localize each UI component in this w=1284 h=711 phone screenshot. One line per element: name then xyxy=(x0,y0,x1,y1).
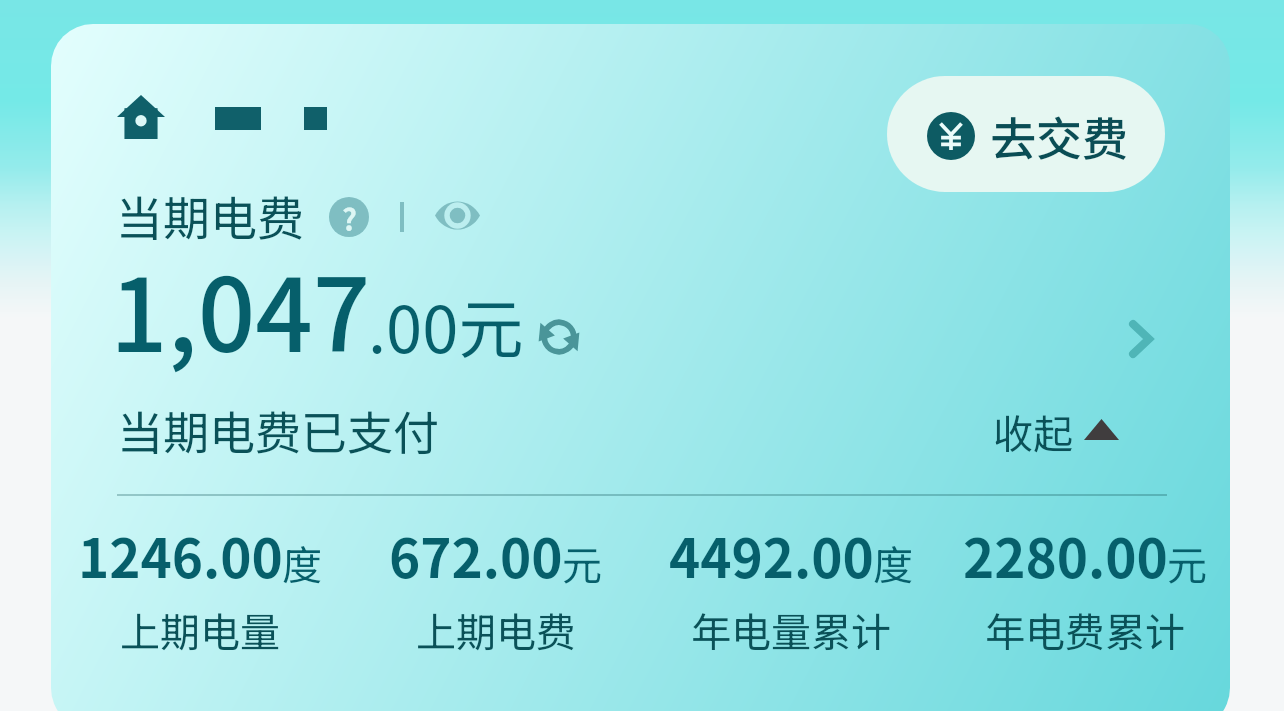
staticText: 上期电费 xyxy=(416,601,576,659)
staticText: 元 xyxy=(1167,534,1207,592)
button[interactable]: 去交费 xyxy=(887,76,1165,192)
staticText: 去交费 xyxy=(990,103,1128,170)
staticText: 元 xyxy=(562,534,602,592)
staticText: 年电费累计 xyxy=(985,601,1185,659)
button[interactable]: Help xyxy=(329,197,369,237)
staticText: 1,047 xyxy=(110,235,371,381)
staticText: 度 xyxy=(873,534,913,592)
staticText: 当期电费已支付 xyxy=(117,397,439,464)
staticText: 收起 xyxy=(993,403,1073,461)
button[interactable]: Toggle amount visibility xyxy=(435,199,480,232)
staticText: ? xyxy=(342,197,357,237)
staticText: 4492.00 xyxy=(669,517,874,594)
staticText: 上期电量 xyxy=(120,601,280,659)
staticText: 672.00 xyxy=(389,517,563,594)
button[interactable]: 收起 xyxy=(993,403,1121,461)
staticText: 1246.00 xyxy=(78,517,283,594)
staticText: 当期电费 xyxy=(116,181,304,249)
staticText: 2280.00 xyxy=(963,517,1168,594)
staticText: 年电量累计 xyxy=(691,601,891,659)
staticText: .00元 xyxy=(368,278,524,372)
staticText: 度 xyxy=(282,534,322,592)
button[interactable]: Open bill details xyxy=(1129,320,1153,358)
button[interactable]: Refresh xyxy=(534,312,584,362)
